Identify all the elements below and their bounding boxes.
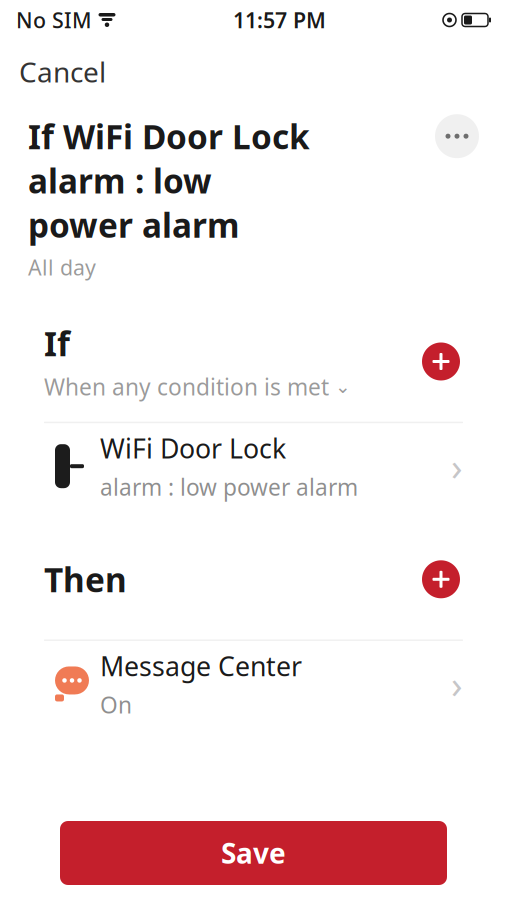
button[interactable]: Add Then item — [419, 557, 463, 601]
button[interactable]: More options — [435, 114, 479, 158]
staticText: On — [100, 690, 132, 720]
staticText: Cancel — [19, 53, 106, 90]
staticText: Save — [221, 834, 286, 872]
staticText: Message Center — [100, 648, 302, 684]
staticText: › — [451, 441, 463, 491]
button[interactable]: Cancel — [0, 47, 125, 96]
staticText: No SIM — [16, 6, 92, 34]
button[interactable]: Save — [60, 821, 447, 885]
staticText: Then — [44, 557, 127, 601]
staticText: alarm : low power alarm — [100, 472, 358, 502]
staticText: If WiFi Door Lock alarm : low power alar… — [28, 114, 310, 247]
button[interactable]: Add If item — [419, 339, 463, 383]
button[interactable]: WiFi Door Lock — [0, 423, 507, 509]
staticText: If — [44, 321, 70, 366]
staticText: ⌄ — [335, 376, 351, 397]
button[interactable]: When any condition is met — [44, 372, 351, 402]
staticText: When any condition is met — [44, 372, 329, 402]
staticText: WiFi Door Lock — [100, 430, 286, 466]
staticText: 11:57 PM — [233, 6, 326, 34]
staticText: › — [451, 659, 463, 709]
staticText: All day — [28, 253, 96, 281]
button[interactable]: Message Center — [0, 641, 507, 727]
